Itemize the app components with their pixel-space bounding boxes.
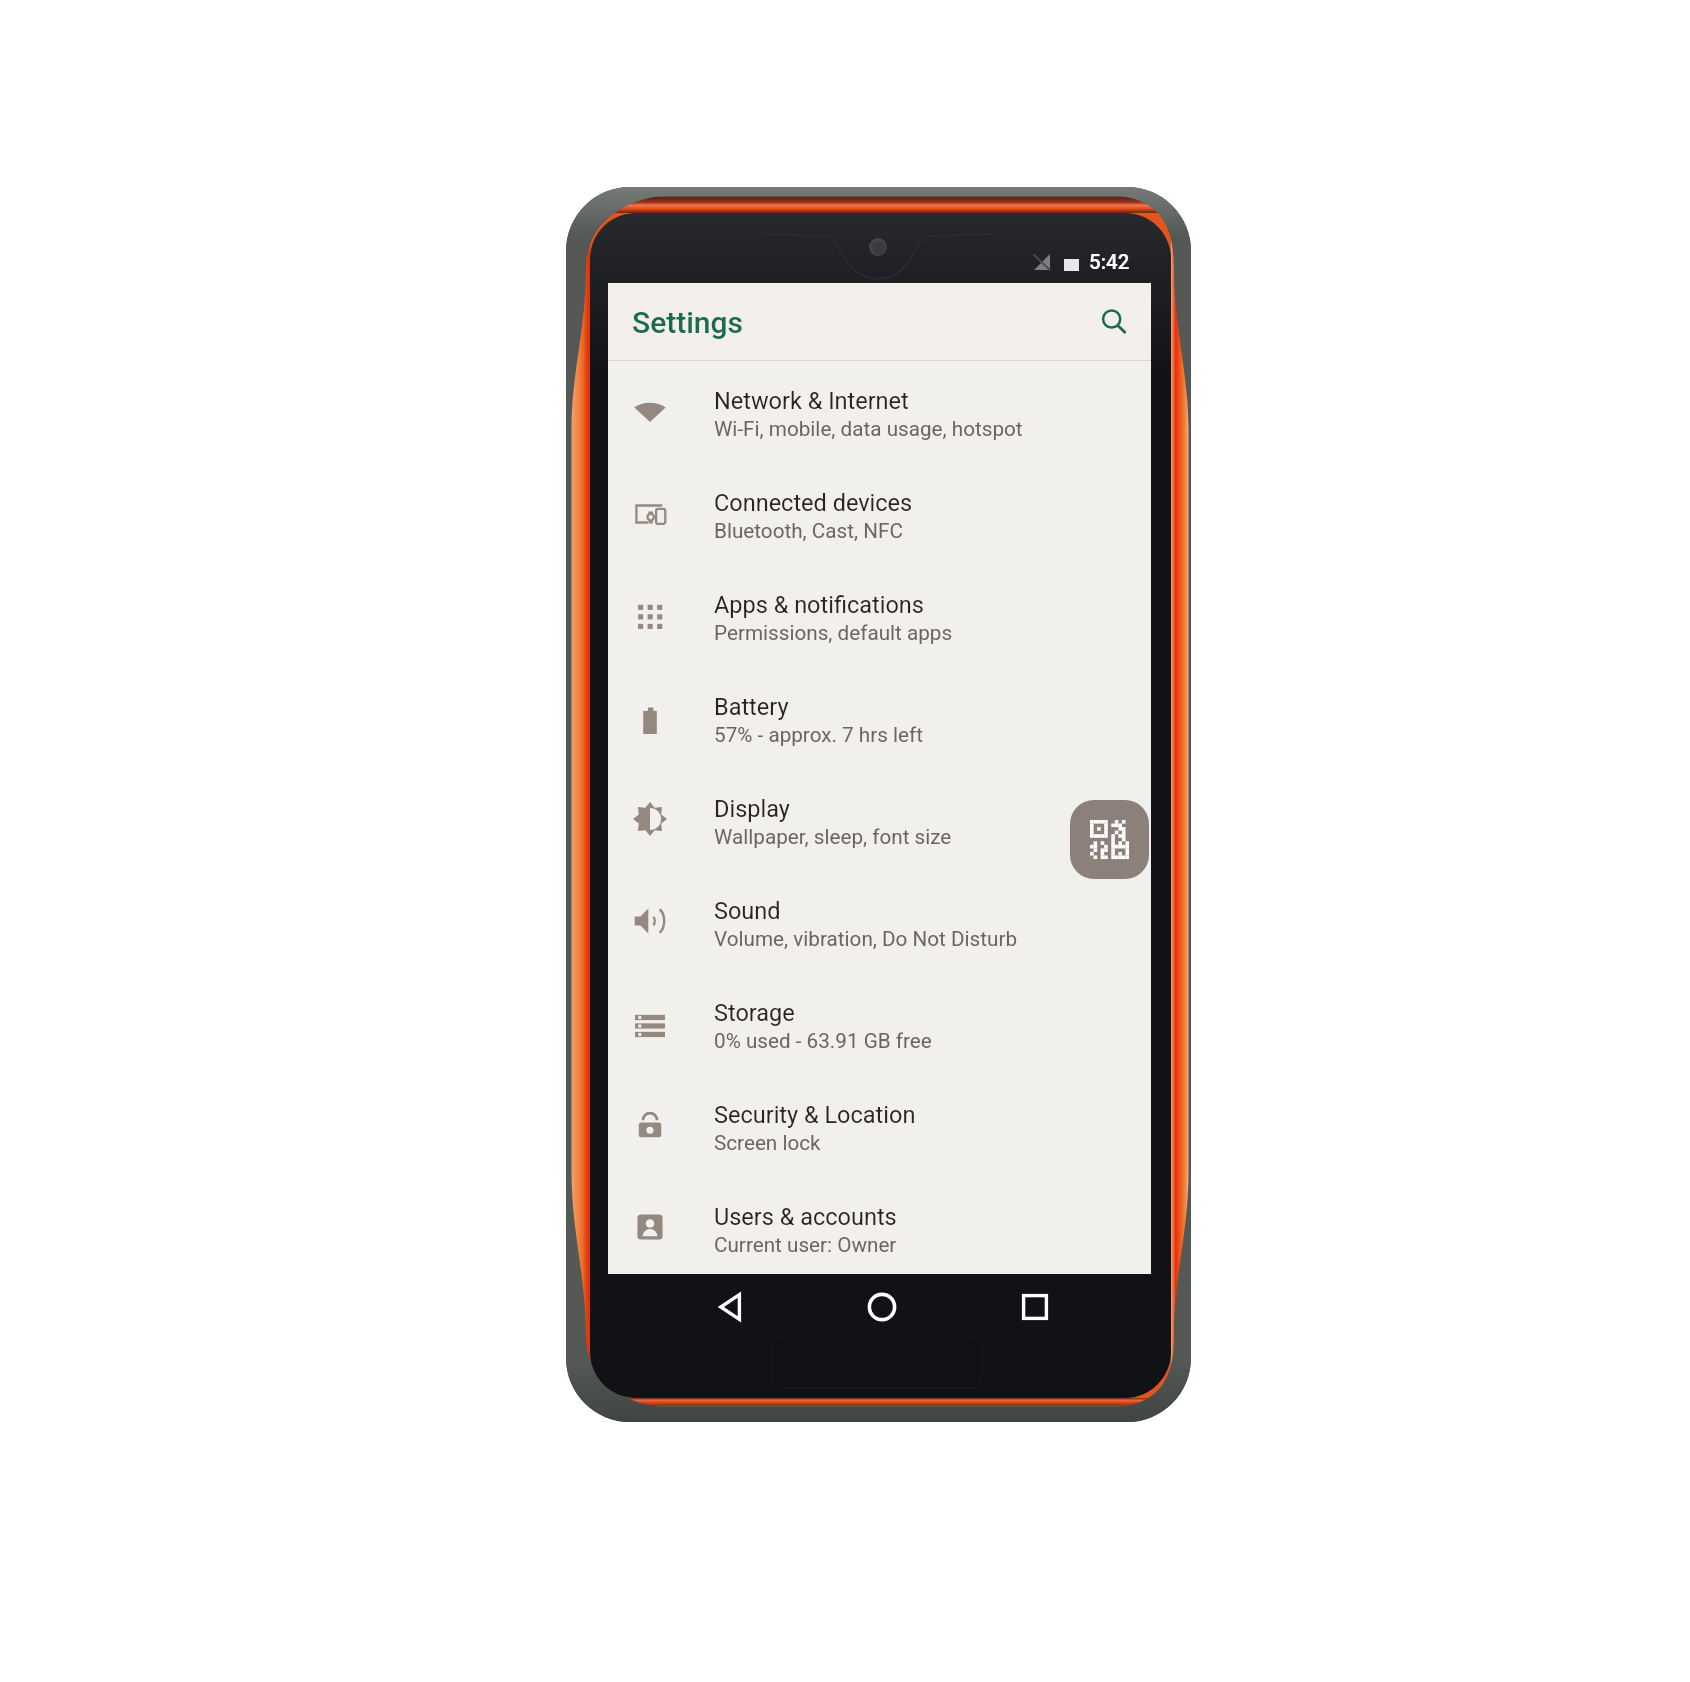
staticText: Bluetooth, Cast, NFC	[714, 519, 903, 543]
staticText: Wi-Fi, mobile, data usage, hotspot	[714, 417, 1023, 441]
button[interactable]: Battery	[608, 666, 1151, 768]
button[interactable]: Back	[705, 1281, 757, 1333]
button[interactable]: Search	[1086, 295, 1140, 349]
button[interactable]: Apps & notifications	[608, 564, 1151, 666]
button[interactable]: Sound	[608, 870, 1151, 972]
button[interactable]: Users & accounts	[608, 1176, 1151, 1278]
staticText: Wallpaper, sleep, font size	[714, 825, 952, 849]
staticText: Network & Internet	[714, 387, 909, 415]
staticText: 0% used - 63.91 GB free	[714, 1029, 932, 1053]
button[interactable]: Home	[856, 1281, 908, 1333]
staticText: Volume, vibration, Do Not Disturb	[714, 927, 1018, 951]
staticText: Connected devices	[714, 489, 913, 517]
button[interactable]: Settings	[632, 295, 812, 349]
staticText: Apps & notifications	[714, 591, 924, 619]
button[interactable]: Network & Internet	[608, 360, 1151, 462]
button[interactable]: Recents	[1009, 1281, 1061, 1333]
staticText: Settings	[632, 305, 744, 340]
staticText: Battery	[714, 693, 789, 721]
staticText: Sound	[714, 897, 781, 925]
staticText: 57% - approx. 7 hrs left	[714, 723, 924, 747]
staticText: Storage	[714, 999, 795, 1027]
staticText: Display	[714, 795, 790, 823]
button[interactable]: Security & Location	[608, 1074, 1151, 1176]
staticText: 5:42	[1089, 250, 1130, 274]
staticText: Permissions, default apps	[714, 621, 953, 645]
button[interactable]: Scan QR code	[1070, 800, 1149, 879]
button[interactable]: Connected devices	[608, 462, 1151, 564]
button[interactable]: Storage	[608, 972, 1151, 1074]
staticText: Screen lock	[714, 1131, 821, 1155]
staticText: Security & Location	[714, 1101, 916, 1129]
staticText: Current user: Owner	[714, 1233, 897, 1257]
staticText: Users & accounts	[714, 1203, 897, 1231]
button[interactable]: Display	[608, 768, 1151, 870]
